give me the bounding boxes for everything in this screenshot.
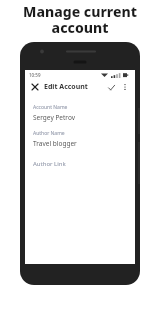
button[interactable]: Save (105, 81, 117, 93)
staticText: Edit Account (44, 82, 88, 92)
staticText: Account Name (33, 104, 68, 111)
staticText: 10:59 (29, 72, 41, 78)
staticText: Manage current account (6, 2, 154, 37)
button[interactable]: Close (29, 81, 41, 93)
button[interactable]: Author Link (25, 160, 135, 172)
staticText: Author Name (33, 130, 65, 137)
staticText: Author Link (33, 160, 66, 168)
button[interactable]: Account Name (25, 104, 135, 122)
button[interactable]: More options (119, 81, 131, 93)
staticText: Sergey Petrov (33, 113, 75, 122)
staticText: Travel blogger (33, 139, 77, 148)
button[interactable]: Author Name (25, 130, 135, 148)
